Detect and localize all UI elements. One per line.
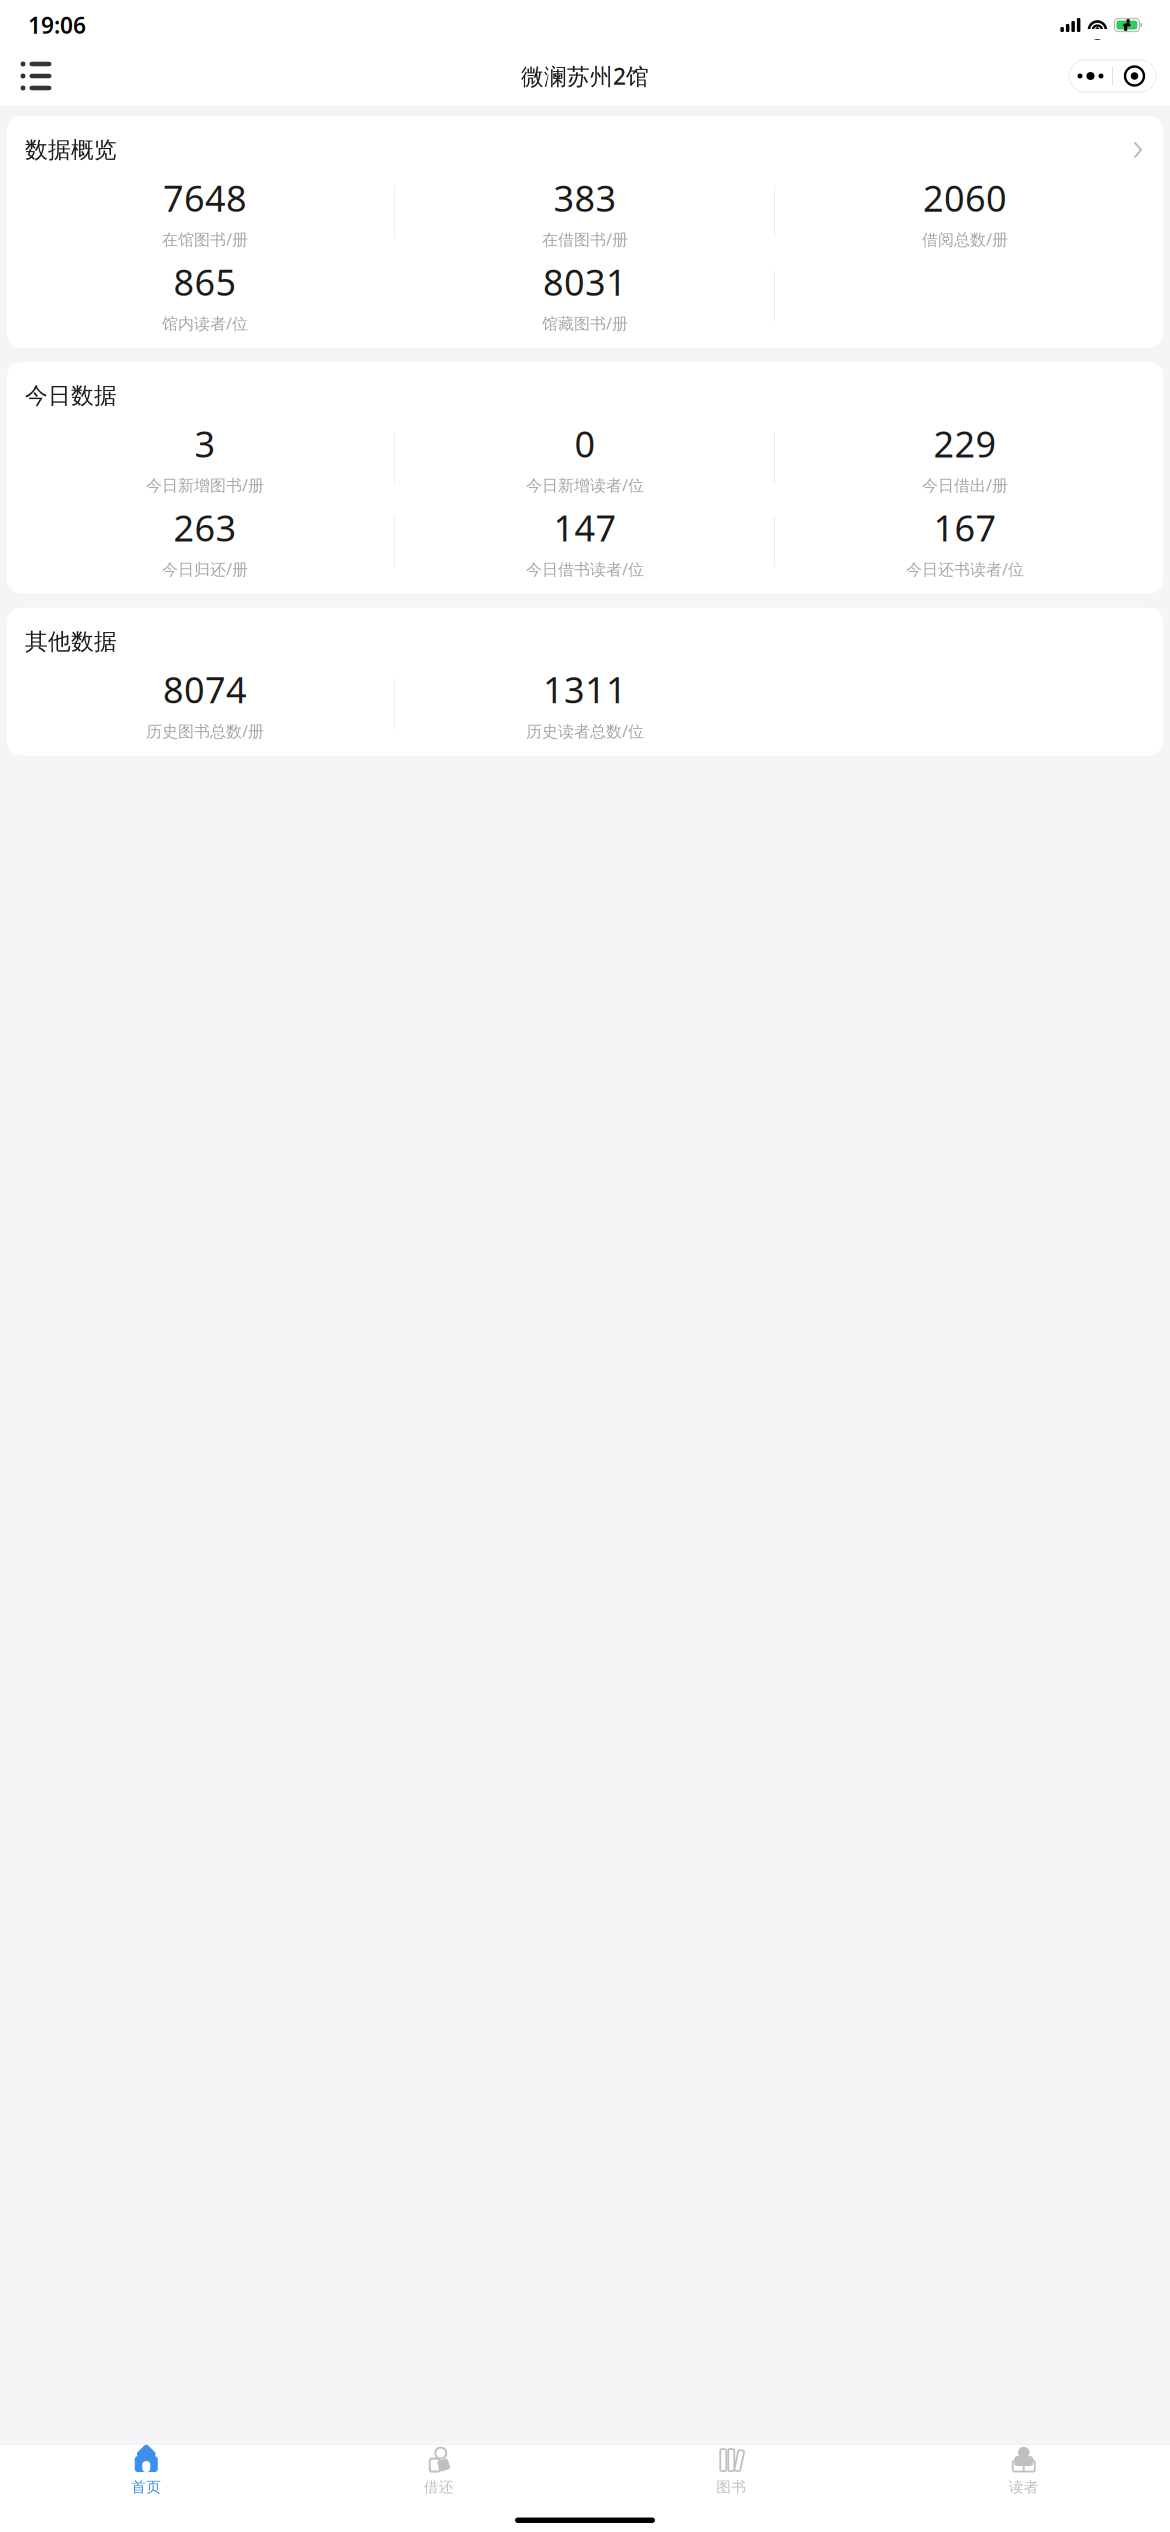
staticText: 其他数据 — [25, 628, 117, 655]
staticText: 今日数据 — [25, 382, 117, 410]
button[interactable]: 首页 — [0, 2439, 292, 2502]
staticText: 383 — [553, 174, 616, 222]
staticText: 历史图书总数/册 — [146, 720, 264, 741]
staticText: 8074 — [163, 665, 247, 713]
staticText: 借还 — [424, 2478, 454, 2496]
staticText: 229 — [933, 420, 996, 467]
staticText: 0 — [574, 420, 595, 467]
button[interactable]: 数据概览 — [7, 116, 1163, 174]
staticText: 在馆图书/册 — [162, 229, 248, 250]
staticText: 馆藏图书/册 — [542, 313, 628, 334]
staticText: 167 — [933, 504, 996, 551]
staticText: 今日归还/册 — [162, 558, 248, 580]
staticText: 借阅总数/册 — [922, 229, 1008, 250]
staticText: 今日新增图书/册 — [146, 474, 264, 496]
staticText: 今日借出/册 — [922, 474, 1008, 496]
staticText: 865 — [173, 258, 236, 306]
button[interactable]: 读者 — [877, 2439, 1170, 2502]
staticText: 2060 — [923, 174, 1007, 222]
staticText: 3 — [194, 420, 215, 467]
staticText: 首页 — [131, 2478, 161, 2496]
button[interactable]: 借还 — [292, 2439, 585, 2502]
staticText: 263 — [173, 504, 236, 551]
staticText: 历史读者总数/位 — [526, 720, 644, 741]
staticText: 8031 — [543, 258, 627, 306]
button[interactable]: 菜单 — [14, 54, 58, 98]
staticText: 微澜苏州2馆 — [521, 61, 649, 91]
staticText: 7648 — [163, 174, 247, 222]
staticText: 19:06 — [28, 10, 86, 40]
staticText: 数据概览 — [25, 136, 117, 164]
staticText: 1311 — [543, 665, 627, 713]
button[interactable]: 图书 — [585, 2439, 877, 2502]
staticText: 今日借书读者/位 — [526, 558, 644, 580]
staticText: 读者 — [1009, 2478, 1039, 2496]
staticText: 在借图书/册 — [542, 229, 628, 250]
staticText: 馆内读者/位 — [162, 313, 248, 334]
staticText: 147 — [553, 504, 616, 551]
staticText: 今日新增读者/位 — [526, 474, 644, 496]
staticText: 今日还书读者/位 — [906, 558, 1024, 580]
button[interactable]: 更多 — [1069, 60, 1156, 92]
staticText: 图书 — [716, 2478, 746, 2496]
